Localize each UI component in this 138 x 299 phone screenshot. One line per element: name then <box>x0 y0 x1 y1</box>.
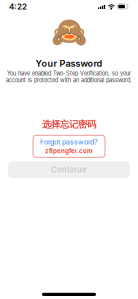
staticText: You have enabled Two-Step Verification, … <box>7 70 131 77</box>
staticText: Continue <box>51 165 87 174</box>
staticText: Forgot password? <box>40 138 98 146</box>
button[interactable]: Continue <box>8 161 130 178</box>
staticText: 🙈 <box>50 15 87 49</box>
staticText: 选择忘记密码 <box>42 118 96 130</box>
staticText: account is protected with an additional … <box>6 77 132 83</box>
staticText: 4:22 <box>9 2 27 11</box>
button[interactable]: Forgot password? <box>40 138 98 146</box>
staticText: zflpengfei.com <box>45 147 93 155</box>
staticText: Your Password <box>35 58 102 69</box>
